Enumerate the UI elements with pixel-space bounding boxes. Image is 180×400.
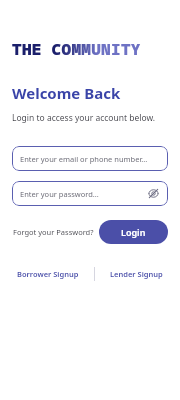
staticText: Enter your password... (20, 189, 147, 199)
staticText: Welcome Back (12, 83, 121, 103)
staticText: Lender Signup (110, 269, 163, 279)
button[interactable]: Show password (147, 187, 160, 200)
button[interactable]: Lender Signup (106, 266, 167, 282)
staticText: THE COMMUNITY (12, 38, 141, 56)
staticText: Login (121, 226, 146, 238)
staticText: Forgot your Password? (13, 227, 94, 237)
button[interactable]: Login (99, 220, 168, 244)
staticText: Enter your email or phone number... (20, 154, 160, 164)
staticText: Login to access your account below. (12, 112, 156, 124)
button[interactable]: Forgot your Password? (12, 224, 95, 240)
button[interactable]: Enter your password... (12, 181, 168, 206)
button[interactable]: Enter your email or phone number... (12, 146, 168, 171)
button[interactable]: Borrower Signup (13, 266, 83, 282)
staticText: Borrower Signup (17, 269, 79, 279)
